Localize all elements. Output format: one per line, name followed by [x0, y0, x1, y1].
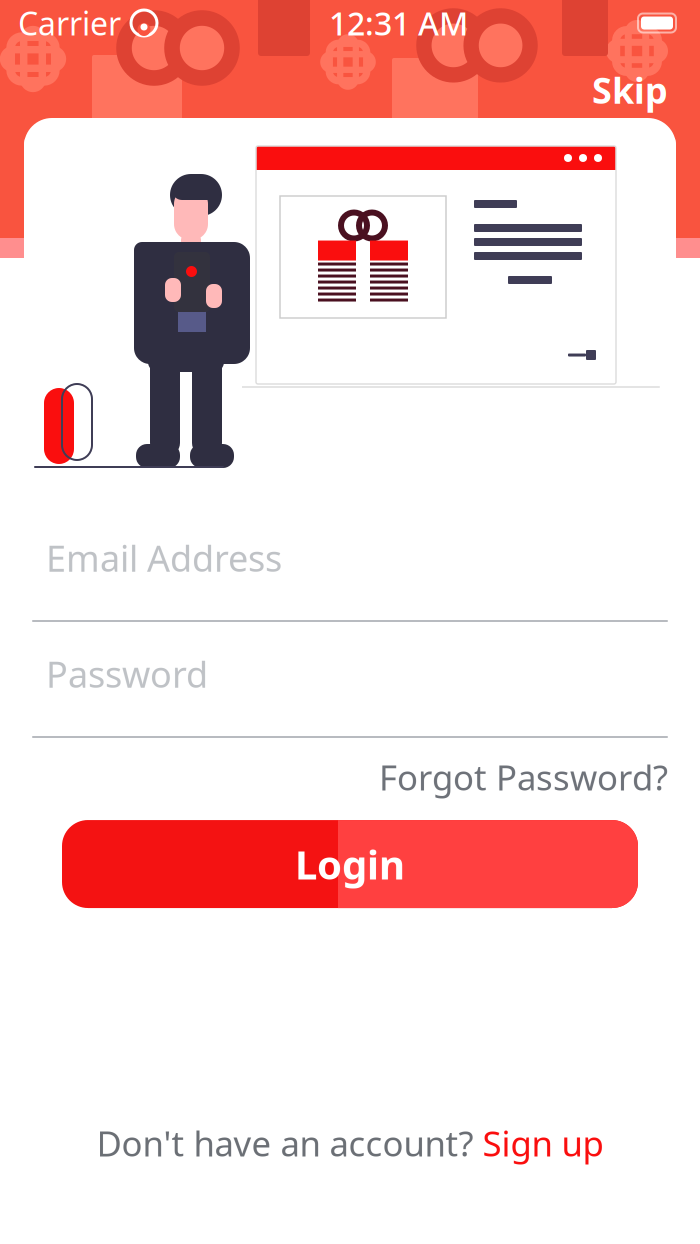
staticText: Login: [295, 837, 405, 891]
button[interactable]: Login: [62, 820, 638, 908]
staticText: Email Address: [46, 534, 282, 582]
staticText: Skip: [592, 66, 668, 114]
staticText: Carrier: [18, 2, 121, 44]
button[interactable]: Don't have an account?: [84, 1112, 615, 1174]
button[interactable]: Forgot Password?: [379, 750, 668, 804]
button[interactable]: Email Address: [32, 534, 668, 622]
button[interactable]: Skip: [578, 60, 682, 120]
staticText: Password: [46, 650, 208, 698]
staticText: Don't have an account?: [96, 1120, 482, 1166]
staticText: Forgot Password?: [379, 754, 668, 800]
staticText: 12:31 AM: [329, 2, 468, 44]
staticText: Sign up: [482, 1120, 603, 1166]
button[interactable]: Password: [32, 650, 668, 738]
